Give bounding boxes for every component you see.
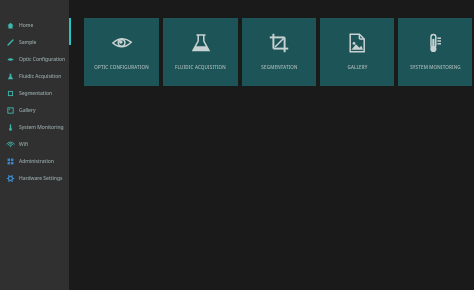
button[interactable]: SEGMENTATION	[242, 18, 316, 86]
button[interactable]: OPTIC CONFIGURATION	[84, 18, 159, 86]
button[interactable]: Wifi	[0, 136, 69, 153]
button[interactable]: Hardware Settings	[0, 170, 69, 187]
button[interactable]: SYSTEM MONITORING	[398, 18, 472, 86]
button[interactable]: FLUIDIC ACQUISITION	[163, 18, 238, 86]
button[interactable]: Sample	[0, 34, 69, 51]
staticText: SEGMENTATION	[261, 64, 298, 70]
button[interactable]: Optic Configuration	[0, 51, 69, 68]
staticText: Wifi	[19, 141, 28, 148]
staticText: System Monitoring	[19, 124, 64, 131]
staticText: OPTIC CONFIGURATION	[94, 64, 149, 70]
button[interactable]: Home	[0, 17, 69, 34]
staticText: SYSTEM MONITORING	[410, 64, 461, 70]
button[interactable]: Segmentation	[0, 85, 69, 102]
button[interactable]: Administration	[0, 153, 69, 170]
staticText: Gallery	[19, 107, 36, 114]
staticText: FLUIDIC ACQUISITION	[175, 64, 226, 70]
button[interactable]: System Monitoring	[0, 119, 69, 136]
button[interactable]: Fluidic Acquisition	[0, 68, 69, 85]
button[interactable]: GALLERY	[320, 18, 394, 86]
staticText: Segmentation	[19, 90, 53, 97]
staticText: Hardware Settings	[19, 175, 63, 182]
staticText: GALLERY	[347, 64, 368, 70]
staticText: Sample	[19, 39, 37, 46]
button[interactable]: Gallery	[0, 102, 69, 119]
staticText: Home	[19, 22, 34, 29]
staticText: Administration	[19, 158, 54, 165]
staticText: Optic Configuration	[19, 56, 66, 63]
staticText: Fluidic Acquisition	[19, 73, 62, 80]
